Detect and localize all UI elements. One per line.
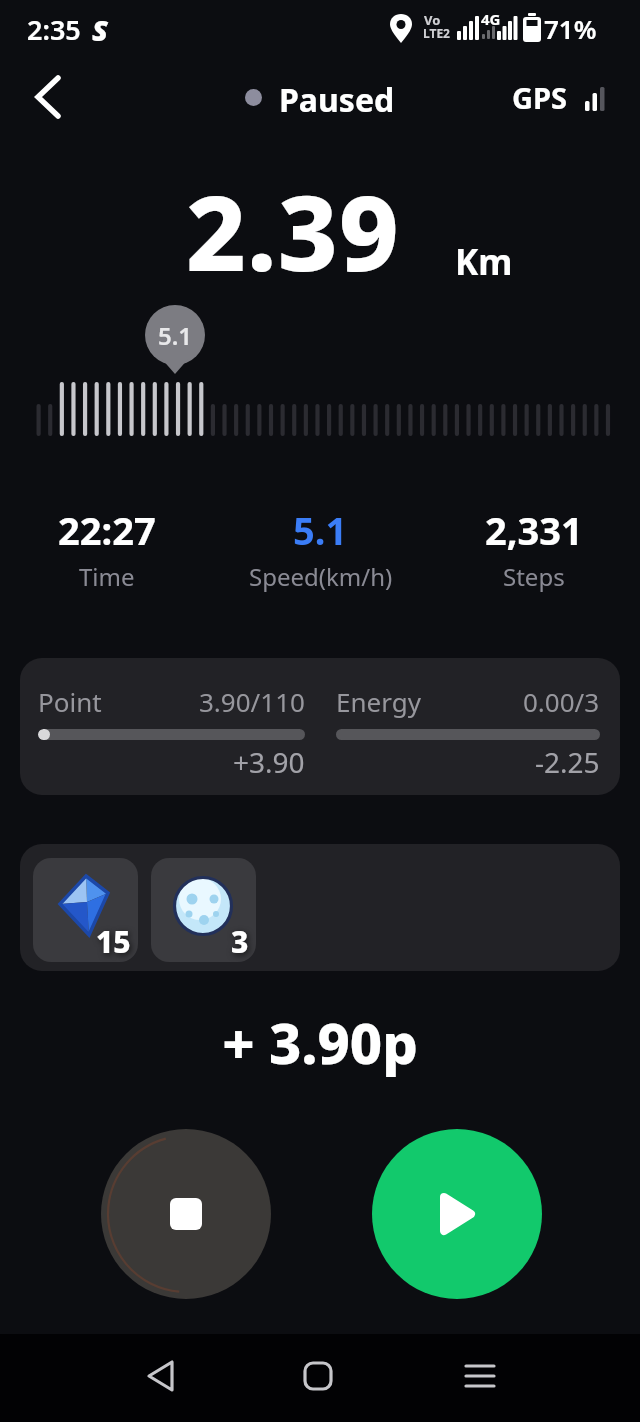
staticText: Time <box>79 560 135 593</box>
staticText: 0.00/3 <box>523 684 600 719</box>
button[interactable]: 15 <box>33 858 138 962</box>
button[interactable]: 3 <box>151 858 256 962</box>
staticText: 71% <box>544 11 597 46</box>
button[interactable] <box>24 72 74 122</box>
staticText: S <box>92 10 108 49</box>
staticText: Km <box>455 238 513 286</box>
staticText: + 3.90p <box>0 1004 640 1080</box>
staticText: Speed(km/h) <box>249 560 393 593</box>
staticText: 5.1 <box>158 319 193 352</box>
staticText: 2.39 <box>186 160 400 302</box>
staticText: +3.90 <box>233 743 305 781</box>
staticText: 2,331 <box>485 504 583 556</box>
staticText: -2.25 <box>535 743 600 781</box>
staticText: 4G <box>481 9 501 29</box>
staticText: Point <box>38 684 102 719</box>
staticText: 2:35 <box>27 11 81 48</box>
staticText: 3.90/110 <box>199 684 305 719</box>
staticText: 15 <box>96 921 131 962</box>
button[interactable]: GPS <box>505 72 615 122</box>
staticText: Vo <box>424 11 441 29</box>
button[interactable] <box>101 1129 271 1299</box>
staticText: 5.1 <box>293 504 348 556</box>
staticText: 22:27 <box>58 504 156 556</box>
staticText: GPS <box>512 78 567 117</box>
button[interactable] <box>372 1129 542 1299</box>
button[interactable] <box>450 1346 510 1406</box>
button[interactable] <box>130 1346 190 1406</box>
staticText: Steps <box>503 560 565 593</box>
staticText: Paused <box>279 78 395 122</box>
staticText: 3 <box>231 921 249 962</box>
staticText: LTE2 <box>423 25 450 41</box>
staticText: Energy <box>336 684 421 719</box>
button[interactable] <box>288 1346 348 1406</box>
